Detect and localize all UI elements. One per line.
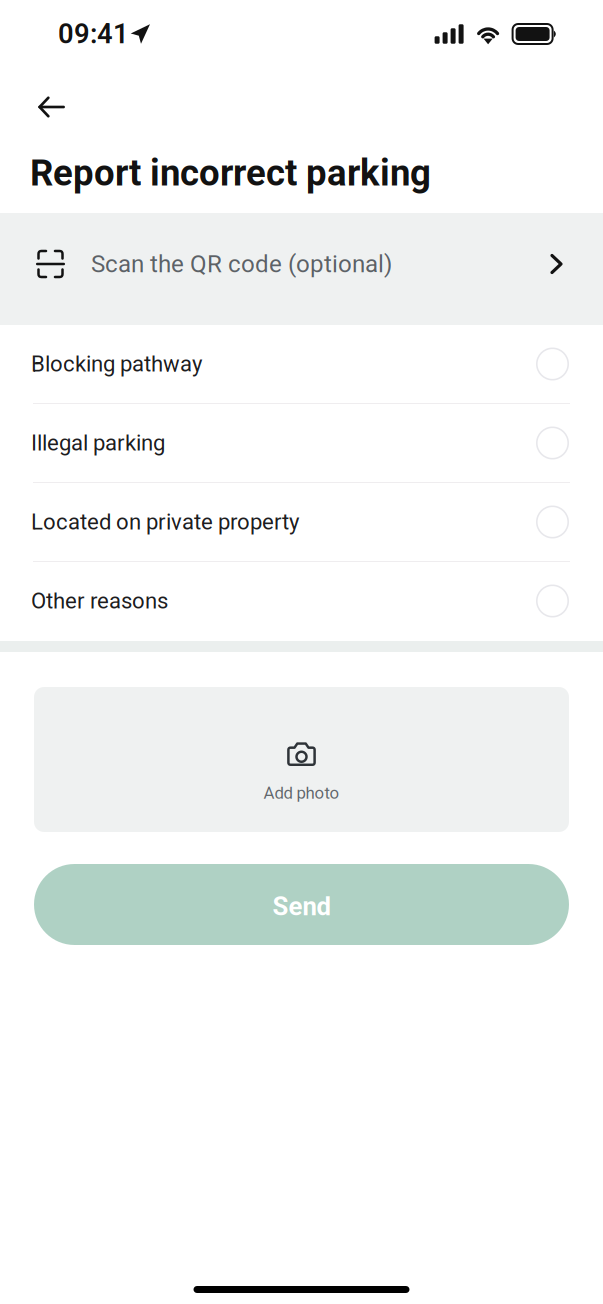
staticText: Add photo xyxy=(263,783,339,803)
button[interactable]: Other reasons xyxy=(0,562,603,641)
staticText: Located on private property xyxy=(31,509,299,535)
staticText: Blocking pathway xyxy=(31,351,202,377)
button[interactable]: Located on private property xyxy=(0,483,603,562)
button[interactable]: Send xyxy=(34,864,569,945)
staticText: Report incorrect parking xyxy=(30,152,431,194)
button[interactable]: Back xyxy=(0,81,85,133)
staticText: Send xyxy=(272,891,330,922)
staticText: Illegal parking xyxy=(31,430,165,456)
button[interactable]: Add photo xyxy=(34,687,569,832)
staticText: Other reasons xyxy=(31,588,168,614)
staticText: 09:41 xyxy=(58,18,129,50)
button[interactable]: Blocking pathway xyxy=(0,325,603,404)
staticText: Scan the QR code (optional) xyxy=(91,250,392,278)
button[interactable]: Illegal parking xyxy=(0,404,603,483)
button[interactable]: Scan the QR code (optional) xyxy=(0,213,603,325)
